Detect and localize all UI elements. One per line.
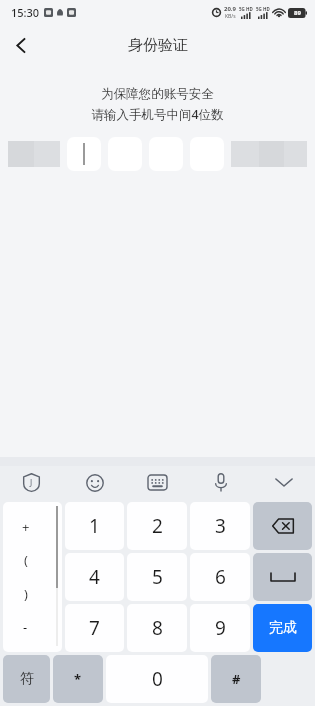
button[interactable]: 3 [190,502,250,550]
button[interactable]: Backspace [253,502,312,550]
staticText: 3 [215,513,226,539]
button[interactable]: 0 [106,655,208,703]
staticText: 7 [89,615,100,641]
staticText: 0 [152,666,163,692]
staticText: 5G HD [256,6,270,12]
button[interactable]: 6 [190,553,250,601]
button[interactable]: 5 [127,553,187,601]
staticText: 身份验证 [128,36,188,55]
button[interactable]: * [53,655,103,703]
button[interactable]: 8 [127,604,187,652]
staticText: 2 [152,513,163,539]
staticText: 8 [152,615,163,641]
button[interactable]: Back [4,28,38,62]
button[interactable]: + [3,502,62,652]
staticText: 9 [215,615,226,641]
staticText: 为保障您的账号安全 [101,86,214,102]
staticText: 完成 [269,619,297,637]
button[interactable]: Jingdong keyboard [0,466,63,499]
staticText: 请输入手机号中间4位数 [91,106,224,123]
staticText: 15:30 [11,5,40,20]
staticText: 1 [89,513,100,539]
button[interactable]: Space [253,553,312,601]
staticText: ( [24,551,28,569]
button[interactable]: Hide keyboard [252,466,315,499]
button[interactable]: 完成 [253,604,312,652]
staticText: 5G HD [239,6,253,12]
button[interactable]: Keyboard layout [126,466,189,499]
button[interactable]: 7 [65,604,124,652]
button[interactable]: 4 [65,553,124,601]
staticText: 20.9 [224,5,236,13]
staticText: 4 [89,564,100,590]
staticText: 6 [215,564,226,590]
staticText: + [22,518,30,536]
staticText: * [74,670,82,688]
button[interactable]: 2 [127,502,187,550]
staticText: 5 [152,564,163,590]
staticText: - [23,618,28,636]
button[interactable]: 符 [3,655,50,703]
button[interactable] [67,137,101,171]
staticText: # [232,670,241,688]
button[interactable]: 9 [190,604,250,652]
staticText: ) [24,585,28,603]
staticText: 89 [294,9,301,17]
button[interactable]: Voice input [189,466,252,499]
staticText: 符 [20,670,34,688]
staticText: KB/s [225,13,236,20]
button[interactable]: Emoji [63,466,126,499]
staticText: J [30,477,33,488]
button[interactable]: # [211,655,261,703]
button[interactable]: 1 [65,502,124,550]
